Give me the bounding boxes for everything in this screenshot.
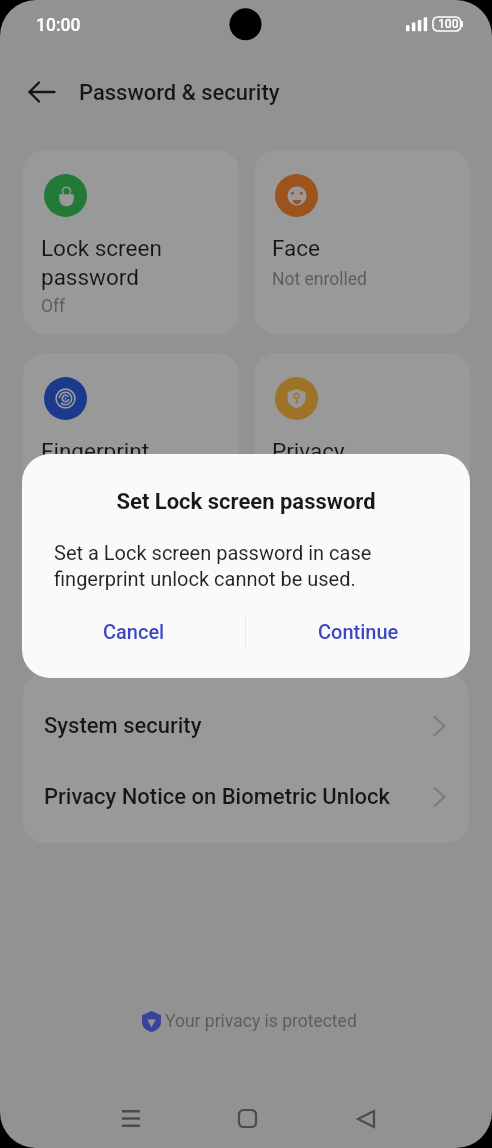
button[interactable]: Continue [246, 603, 470, 659]
staticText: Fingerprint [41, 438, 150, 464]
staticText: Cancel [103, 620, 165, 643]
button[interactable]: Recent apps [102, 1090, 159, 1147]
staticText: Not enrolled [272, 269, 367, 290]
staticText: Your privacy is protected [165, 1011, 357, 1032]
staticText: Set Lock screen password [22, 489, 470, 515]
button[interactable]: Cancel [22, 603, 245, 659]
staticText: Privacy Notice on Biometric Unlock [44, 784, 429, 810]
button[interactable]: Face [254, 150, 470, 334]
button[interactable]: Back [337, 1090, 394, 1147]
staticText: Off [41, 296, 66, 317]
staticText: Privacy [272, 438, 345, 464]
staticText: Continue [318, 620, 399, 643]
button[interactable]: Fingerprint [23, 353, 239, 537]
button[interactable]: Back [18, 68, 66, 116]
button[interactable]: Privacy [254, 353, 470, 537]
staticText: 100 [438, 17, 459, 31]
button[interactable]: Privacy Notice on Biometric Unlock [23, 761, 469, 832]
button[interactable]: Lock screen password [23, 150, 239, 334]
staticText: Lock screen password [41, 235, 162, 290]
button[interactable]: System security [23, 690, 469, 761]
staticText: Face [272, 235, 321, 261]
staticText: 10:00 [36, 15, 81, 36]
staticText: Password & security [79, 80, 280, 106]
staticText: Set a Lock screen password in case finge… [54, 541, 372, 591]
staticText: System security [44, 713, 429, 739]
button[interactable]: Home [219, 1090, 276, 1147]
